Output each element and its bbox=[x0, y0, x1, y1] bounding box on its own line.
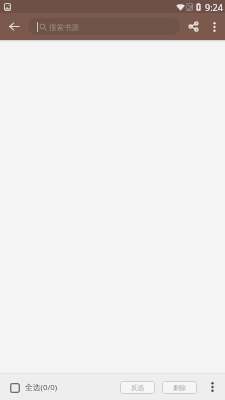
button[interactable]: Back bbox=[0, 13, 27, 40]
button[interactable]: 搜索书源 bbox=[28, 18, 180, 35]
staticText: 反选 bbox=[131, 384, 145, 392]
staticText: 全选(0/0) bbox=[25, 382, 58, 393]
button[interactable]: 全选(0/0) bbox=[6, 377, 62, 398]
staticText: 9:24 bbox=[205, 1, 223, 13]
button[interactable]: 反选 bbox=[120, 381, 155, 394]
staticText: 搜索书源 bbox=[49, 23, 79, 32]
button[interactable]: Share bbox=[183, 13, 204, 40]
button[interactable]: 删除 bbox=[162, 381, 197, 394]
staticText: 删除 bbox=[173, 384, 187, 392]
button[interactable]: More options bbox=[205, 13, 223, 40]
button[interactable]: More options bbox=[203, 374, 221, 400]
